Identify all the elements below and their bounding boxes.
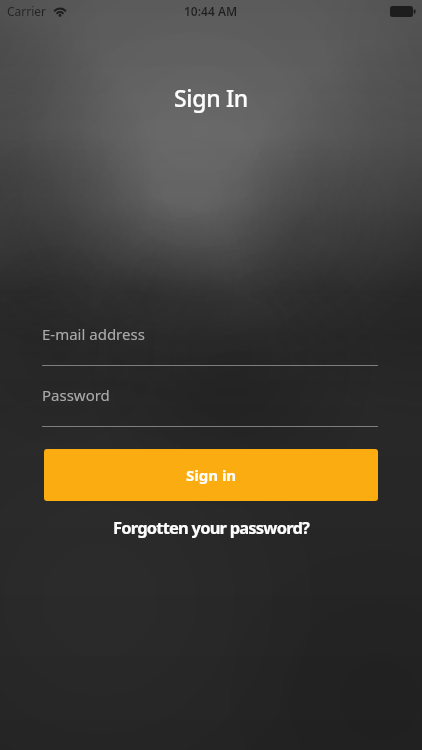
staticText: Carrier: [7, 3, 47, 19]
staticText: 10:44 AM: [184, 3, 238, 19]
button[interactable]: E-mail address: [42, 318, 378, 366]
staticText: E-mail address: [42, 324, 145, 344]
staticText: Forgotten your password?: [113, 516, 310, 538]
staticText: Sign In: [0, 82, 422, 113]
staticText: Sign in: [186, 465, 237, 485]
button[interactable]: Sign in: [44, 449, 378, 501]
button[interactable]: Password: [42, 379, 378, 427]
staticText: Password: [42, 385, 110, 405]
button[interactable]: Forgotten your password?: [0, 511, 422, 543]
